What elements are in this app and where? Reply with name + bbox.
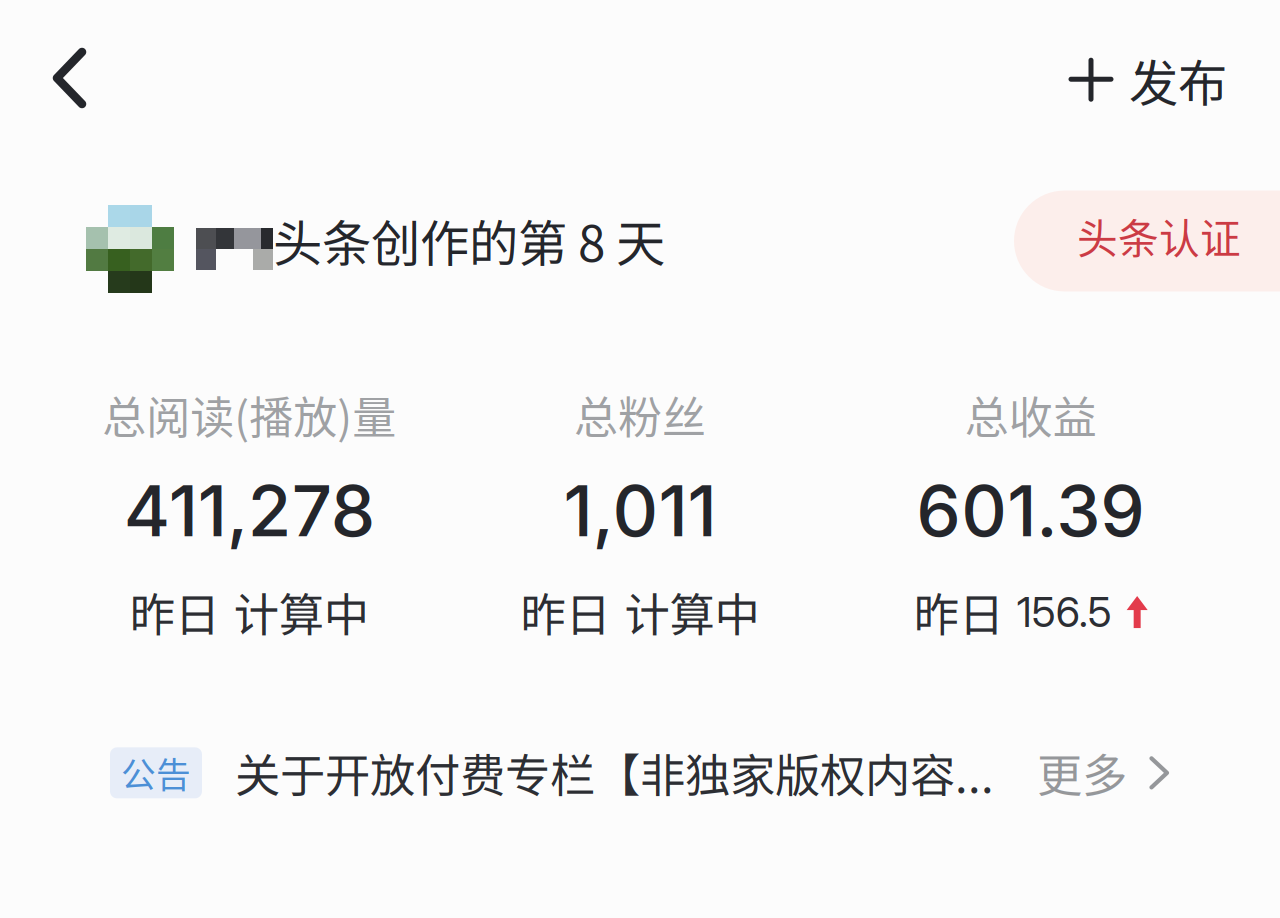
staticText: 156.5 bbox=[1017, 587, 1112, 637]
staticText: 411,278 bbox=[124, 468, 375, 553]
staticText: 头条认证 bbox=[1077, 207, 1241, 265]
staticText: 公告 bbox=[121, 748, 191, 798]
staticText: 昨日 bbox=[914, 579, 1004, 645]
staticText: 601.39 bbox=[916, 468, 1145, 553]
staticText: 发布 bbox=[1129, 44, 1227, 115]
staticText: 总粉丝 bbox=[574, 383, 706, 447]
staticText: 头条创作的第 8 天 bbox=[273, 204, 665, 276]
button[interactable]: Back bbox=[0, 0, 127, 132]
button[interactable]: 公告 bbox=[0, 735, 1280, 811]
staticText: 计算中 bbox=[624, 579, 759, 645]
staticText: 总阅读(播放)量 bbox=[102, 383, 396, 447]
staticText: 计算中 bbox=[234, 579, 369, 645]
staticText: 更多 bbox=[1037, 740, 1127, 806]
staticText: 昨日 bbox=[130, 579, 220, 645]
staticText: 1,011 bbox=[563, 468, 716, 553]
staticText: 昨日 bbox=[520, 579, 610, 645]
staticText: 关于开放付费专栏【非独家版权内容... bbox=[235, 740, 994, 806]
staticText: 总收益 bbox=[965, 383, 1097, 447]
button[interactable]: 发布 bbox=[1029, 0, 1280, 143]
